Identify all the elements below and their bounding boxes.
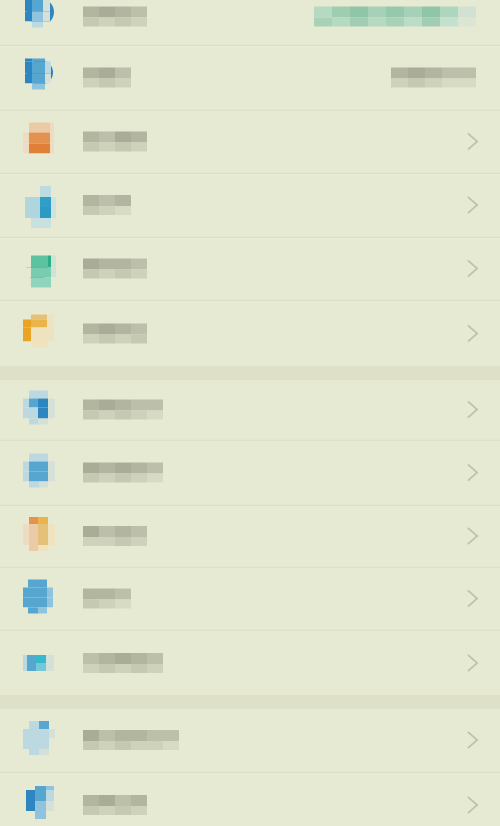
button[interactable]: 存储空间	[0, 301, 500, 366]
button[interactable]: 账号	[0, 0, 500, 46]
button[interactable]: 意见反馈	[0, 709, 500, 773]
button[interactable]: 消息通知	[0, 111, 500, 174]
button[interactable]: 通用设置	[0, 238, 500, 301]
button[interactable]: 评分	[0, 568, 500, 631]
button[interactable]: 检查更新	[0, 506, 500, 568]
button[interactable]: 安全	[0, 46, 500, 111]
button[interactable]: 隐私	[0, 174, 500, 238]
button[interactable]: 分享应用	[0, 631, 500, 695]
button[interactable]: 我的客服	[0, 773, 500, 826]
button[interactable]: 帮助与反馈	[0, 380, 500, 441]
button[interactable]: 关于我们	[0, 441, 500, 506]
